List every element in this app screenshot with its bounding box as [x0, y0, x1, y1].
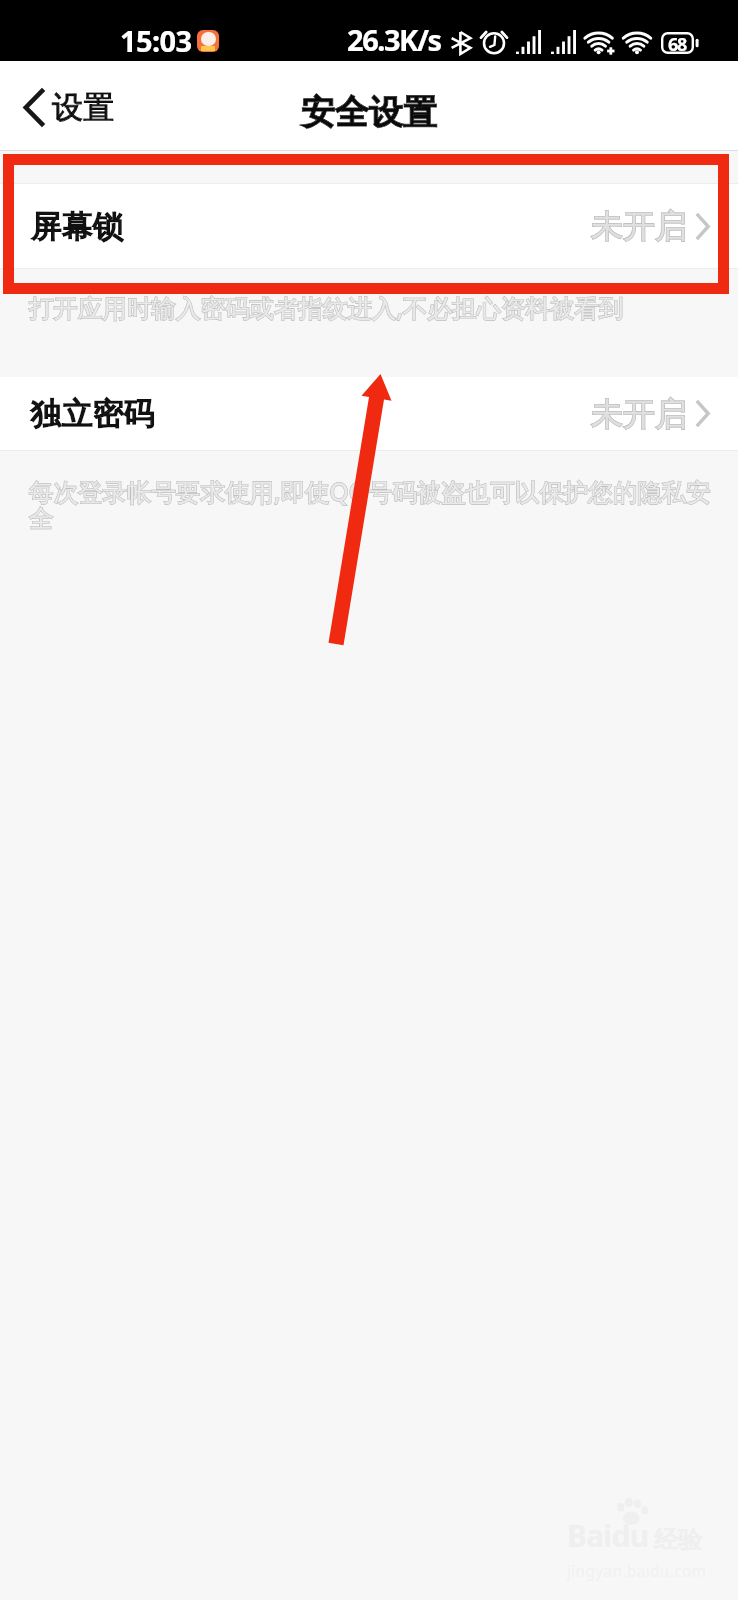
staticText: 屏幕锁 [31, 207, 124, 246]
staticText: 经验 [654, 1525, 702, 1555]
staticText: 未开启 [591, 206, 687, 246]
staticText: 26.3K/s [347, 20, 441, 59]
staticText: 未开启 [591, 206, 687, 246]
staticText: 打开应用时输入密码或者指纹进入,不必担心资料被看到 [29, 291, 624, 324]
staticText: 打开应用时输入密码或者指纹进入,不必担心资料被看到 [29, 291, 624, 324]
button[interactable]: 返回设置 [0, 77, 128, 138]
staticText: 独立密码 [31, 394, 155, 433]
staticText: Baidu [567, 1515, 649, 1556]
staticText: 安全设置 [301, 91, 437, 134]
staticText: 屏幕锁 [31, 207, 124, 246]
staticText: 15:03 [120, 21, 192, 60]
staticText: 每次登录帐号要求使用,即使QQ号码被盗也可以保护您的隐私安全 [29, 475, 721, 535]
staticText: 安全设置 [301, 91, 437, 134]
staticText: 未开启 [591, 394, 687, 434]
staticText: 68 [668, 32, 687, 54]
staticText: 设置 [52, 88, 114, 127]
staticText: 设置 [52, 88, 114, 127]
staticText: 未开启 [591, 394, 687, 434]
staticText: 独立密码 [31, 394, 155, 433]
button[interactable]: 屏幕锁 [0, 184, 738, 268]
staticText: 每次登录帐号要求使用,即使QQ号码被盗也可以保护您的隐私安全 [29, 475, 721, 535]
button[interactable]: 独立密码 [0, 377, 738, 450]
